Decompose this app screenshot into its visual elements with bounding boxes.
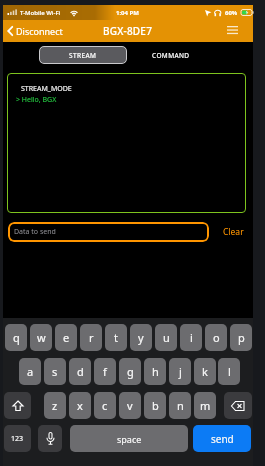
staticText: STREAM <box>69 51 97 60</box>
staticText: Disconnect <box>16 25 63 37</box>
staticText: q <box>13 330 20 345</box>
staticText: s <box>52 364 58 379</box>
button[interactable]: a <box>19 358 41 385</box>
staticText: l <box>228 364 231 379</box>
button[interactable]: r <box>80 324 102 351</box>
staticText: n <box>177 398 184 413</box>
staticText: T-Mobile Wi-Fi <box>20 9 61 17</box>
button[interactable]: COMMAND <box>127 46 214 64</box>
button[interactable]: b <box>144 392 166 419</box>
button[interactable]: j <box>169 358 191 385</box>
staticText: u <box>163 330 170 345</box>
button[interactable]: m <box>194 392 216 419</box>
staticText: o <box>213 330 220 345</box>
button[interactable]: k <box>194 358 216 385</box>
button[interactable]: g <box>119 358 141 385</box>
button[interactable]: t <box>105 324 127 351</box>
staticText: m <box>200 398 211 413</box>
button[interactable] <box>38 425 62 452</box>
button[interactable]: o <box>205 324 227 351</box>
button[interactable]: i <box>180 324 202 351</box>
staticText: x <box>77 398 83 413</box>
button[interactable]: Data to send <box>8 222 209 242</box>
button[interactable]: y <box>130 324 152 351</box>
button[interactable]: l <box>218 358 240 385</box>
staticText: COMMAND <box>152 51 190 60</box>
staticText: STREAM_MODE <box>21 84 72 94</box>
button[interactable]: z <box>44 392 66 419</box>
staticText: i <box>190 330 193 345</box>
staticText: k <box>202 364 208 379</box>
staticText: r <box>89 330 94 345</box>
button[interactable]: STREAM <box>39 46 127 64</box>
button[interactable]: s <box>44 358 66 385</box>
button[interactable]: w <box>30 324 52 351</box>
staticText: 1:04 PM <box>116 9 139 17</box>
staticText: BGX-8DE7 <box>103 24 153 38</box>
staticText: z <box>52 398 58 413</box>
button[interactable]: p <box>230 324 252 351</box>
staticText: h <box>152 364 159 379</box>
button[interactable]: h <box>144 358 166 385</box>
button[interactable]: n <box>169 392 191 419</box>
staticText: b <box>152 398 159 413</box>
button[interactable] <box>4 392 31 419</box>
staticText: e <box>63 330 70 345</box>
button[interactable]: q <box>5 324 27 351</box>
button[interactable] <box>224 392 252 419</box>
staticText: v <box>127 398 133 413</box>
button[interactable]: c <box>94 392 116 419</box>
staticText: Data to send <box>14 227 56 237</box>
button[interactable]: d <box>69 358 91 385</box>
staticText: f <box>103 364 107 379</box>
button[interactable]: Disconnect <box>6 20 63 42</box>
staticText: t <box>114 330 118 345</box>
button[interactable]: Clear <box>215 222 251 242</box>
staticText: p <box>238 330 245 345</box>
button[interactable]: u <box>155 324 177 351</box>
button[interactable]: f <box>94 358 116 385</box>
staticText: Clear <box>223 226 244 238</box>
staticText: 60% <box>225 9 238 17</box>
button[interactable]: 123 <box>4 425 31 452</box>
staticText: d <box>77 364 84 379</box>
button[interactable]: e <box>55 324 77 351</box>
button[interactable]: x <box>69 392 91 419</box>
staticText: send <box>211 432 234 446</box>
staticText: y <box>138 330 144 345</box>
staticText: a <box>27 364 34 379</box>
staticText: space <box>117 433 142 445</box>
staticText: j <box>179 364 182 379</box>
staticText: c <box>102 398 108 413</box>
button[interactable]: send <box>193 425 251 452</box>
button[interactable]: v <box>119 392 141 419</box>
button[interactable] <box>219 21 245 39</box>
staticText: w <box>37 330 46 345</box>
button[interactable]: space <box>70 425 188 452</box>
staticText: > Hello, BGX <box>16 95 57 105</box>
staticText: g <box>127 364 134 379</box>
staticText: 123 <box>11 434 24 444</box>
